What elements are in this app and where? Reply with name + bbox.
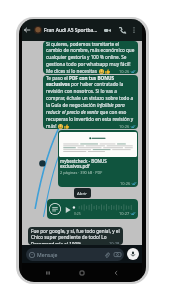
staticText: 10:28 (109, 241, 120, 244)
button[interactable]: Attach (103, 251, 110, 258)
staticText: Recomendaría al 100% (31, 241, 82, 244)
staticText: Mensaje (37, 251, 58, 258)
staticText: 10:27 (119, 211, 130, 216)
staticText: 10:26 (119, 69, 130, 74)
button[interactable]: Play voice message (47, 199, 138, 219)
staticText: Fue por google, y sí, fue todo genial, y… (31, 228, 120, 241)
button[interactable]: Play voice message (64, 206, 71, 213)
button[interactable]: Camera (114, 251, 121, 258)
button[interactable]: Back (22, 19, 142, 41)
button[interactable]: Home (74, 265, 90, 281)
staticText: Abrir (77, 190, 88, 196)
staticText: 10:26 (119, 124, 130, 129)
staticText: 0:25 (74, 211, 81, 216)
button[interactable]: mybestcheck - BONUS exclusivos.pdf (58, 130, 138, 187)
button[interactable]: Si quieres, podemos tramitarte el cambio… (43, 41, 138, 74)
staticText: Fran Audi A5 Sportba... (44, 27, 101, 34)
staticText: Si quieres, podemos tramitarte el cambio… (46, 41, 135, 68)
button[interactable]: Video call (101, 24, 113, 36)
button[interactable]: Call (116, 24, 128, 36)
staticText: Me dices si lo necesitas (46, 68, 99, 74)
button[interactable]: Back (22, 23, 32, 37)
staticText: 10:26 (120, 181, 131, 186)
button[interactable]: Fue por google, y sí, fue todo genial, y… (28, 227, 123, 245)
button[interactable]: More options (129, 25, 139, 35)
staticText: 2 páginas · 390 kB · PDF (60, 170, 103, 175)
staticText: mybestcheck - BONUS exclusivos.pdf (60, 158, 136, 169)
button[interactable]: Abrir (74, 188, 91, 198)
button[interactable]: Te paso el PDF con tus BONUS exclusivos … (43, 75, 138, 129)
staticText: Te paso el PDF con tus BONUS exclusivos … (46, 75, 135, 123)
button[interactable]: Back (108, 265, 124, 281)
staticText: más! (46, 123, 58, 129)
button[interactable]: Recent apps (40, 265, 56, 281)
button[interactable]: Record voice message (127, 248, 139, 260)
button[interactable]: Mensaje (26, 248, 124, 261)
